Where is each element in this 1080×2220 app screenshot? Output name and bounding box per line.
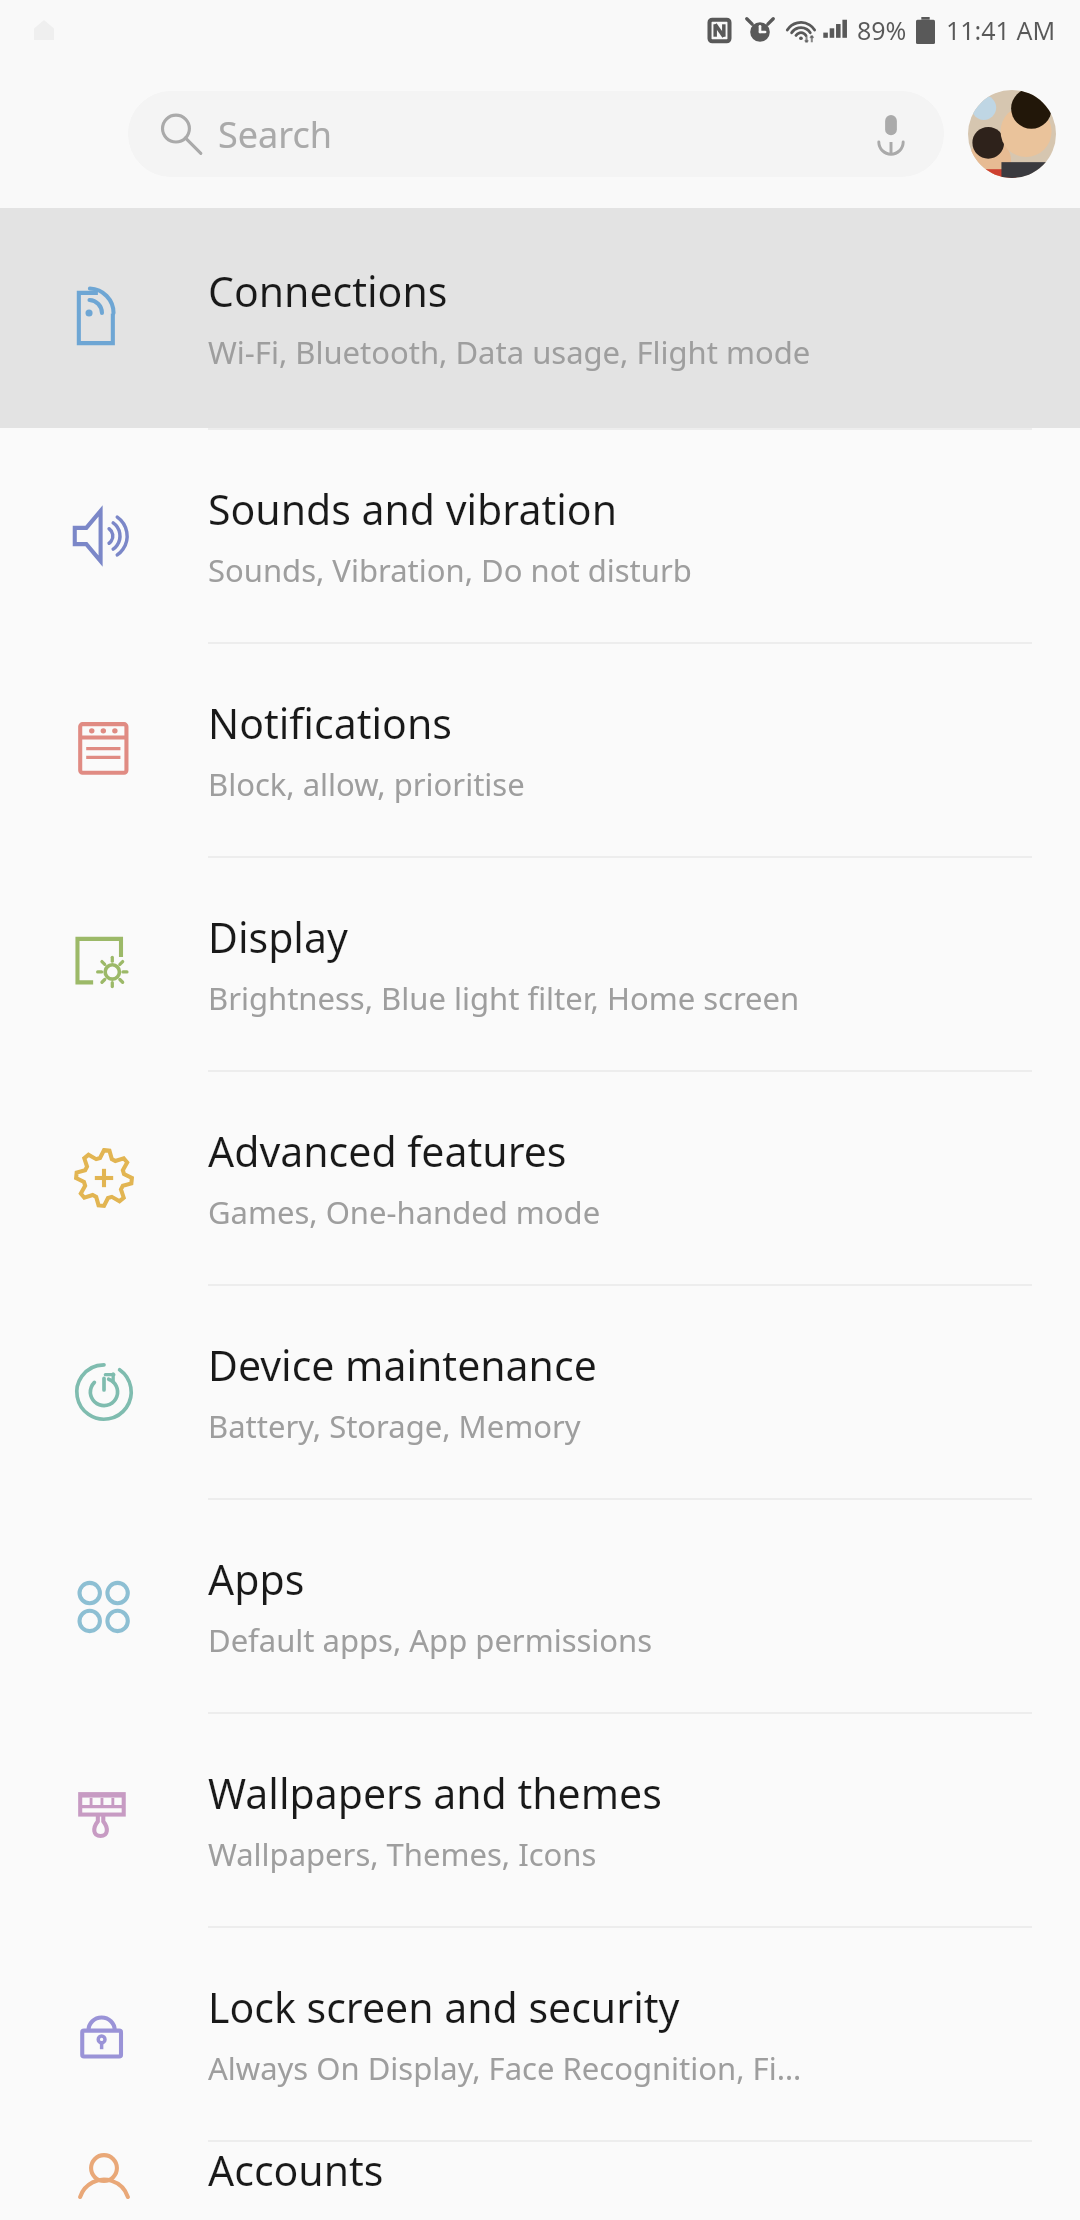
button[interactable]: Device maintenance xyxy=(0,1286,1080,1498)
staticText: Search xyxy=(218,110,332,159)
staticText: Sounds, Vibration, Do not disturb xyxy=(208,549,692,591)
staticText: Default apps, App permissions xyxy=(208,1619,653,1661)
button[interactable]: Wallpapers and themes xyxy=(0,1714,1080,1926)
staticText: Sounds and vibration xyxy=(208,481,617,537)
button[interactable]: Apps xyxy=(0,1500,1080,1712)
staticText: Wallpapers and themes xyxy=(208,1765,662,1821)
button[interactable]: Notifications xyxy=(0,644,1080,856)
other: Voice search xyxy=(870,113,912,155)
staticText: Device maintenance xyxy=(208,1337,597,1393)
staticText: Games, One-handed mode xyxy=(208,1191,601,1233)
button[interactable]: Lock screen and security xyxy=(0,1928,1080,2140)
staticText: Connections xyxy=(208,263,448,319)
staticText: Lock screen and security xyxy=(208,1979,680,2035)
staticText: Wallpapers, Themes, Icons xyxy=(208,1833,597,1875)
staticText: Apps xyxy=(208,1551,305,1607)
staticText: Always On Display, Face Recognition, Fi… xyxy=(208,2047,802,2089)
staticText: Battery, Storage, Memory xyxy=(208,1405,581,1447)
staticText: Notifications xyxy=(208,695,452,751)
button[interactable]: Display xyxy=(0,858,1080,1070)
staticText: 11:41 AM xyxy=(946,13,1056,47)
staticText: Wi-Fi, Bluetooth, Data usage, Flight mod… xyxy=(208,331,811,373)
staticText: 89% xyxy=(857,13,907,47)
staticText: Brightness, Blue light filter, Home scre… xyxy=(208,977,800,1019)
button[interactable]: Advanced features xyxy=(0,1072,1080,1284)
button[interactable]: Connections xyxy=(0,208,1080,428)
button[interactable]: Accounts xyxy=(0,2142,1080,2220)
staticText: Advanced features xyxy=(208,1123,567,1179)
staticText: Display xyxy=(208,909,348,965)
staticText: Block, allow, prioritise xyxy=(208,763,525,805)
button[interactable]: Profile xyxy=(968,90,1056,178)
button[interactable]: Sounds and vibration xyxy=(0,430,1080,642)
staticText: Accounts xyxy=(208,2142,384,2198)
button[interactable]: Search xyxy=(128,91,944,177)
